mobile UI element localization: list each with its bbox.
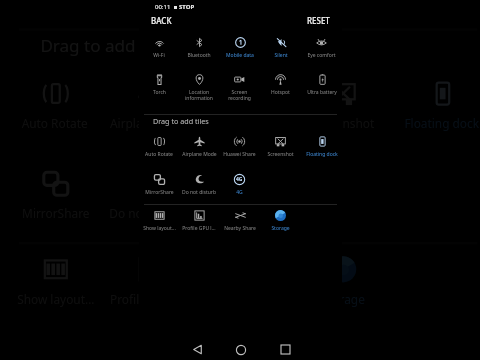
button[interactable]: Nearby Share	[219, 206, 260, 243]
button[interactable]: Airplane Mode	[102, 71, 197, 159]
button[interactable]: Wi-Fi	[139, 33, 179, 70]
button[interactable]: MirrorShare	[7, 161, 102, 249]
staticText: Location information	[185, 89, 213, 102]
button[interactable]: Mobile data	[219, 33, 260, 70]
staticText: Screenshot	[311, 116, 375, 133]
button[interactable]: MirrorShare	[139, 170, 179, 207]
staticText: Bluetooth	[187, 52, 211, 59]
button[interactable]	[301, 170, 342, 207]
button[interactable]: RESET	[307, 15, 330, 26]
staticText: Profile GPU l...	[182, 225, 216, 232]
button[interactable]	[260, 170, 301, 207]
button[interactable]: Floating dock	[392, 71, 480, 159]
button[interactable]: Huawei Share	[219, 132, 260, 169]
staticText: STOP	[179, 3, 195, 11]
staticText: Torch	[153, 89, 166, 96]
staticText: Floating dock	[404, 116, 480, 133]
staticText: MirrorShare	[145, 189, 174, 196]
staticText: Auto Rotate	[145, 151, 173, 158]
staticText: RESET	[307, 15, 330, 26]
button[interactable]: Screen recording	[219, 70, 260, 107]
button[interactable]: Storage	[294, 247, 392, 335]
button[interactable]: Profile GPU l...	[179, 206, 219, 243]
button[interactable]: 4G	[197, 161, 294, 249]
staticText: Ultra battery	[307, 89, 337, 96]
button[interactable]: Ultra battery	[301, 70, 342, 107]
staticText: Huawei Share	[207, 116, 285, 133]
staticText: Eye comfort	[307, 52, 336, 59]
staticText: Drag to add tiles	[40, 33, 173, 57]
staticText: Mobile data	[226, 52, 254, 59]
button[interactable]: Airplane Mode	[179, 132, 219, 169]
staticText: Floating dock	[306, 151, 338, 158]
staticText: Airplane Mode	[109, 116, 192, 133]
button[interactable]: Do not disturb	[102, 161, 197, 249]
button[interactable]: Eye comfort	[301, 33, 342, 70]
staticText: Screen recording	[228, 89, 251, 102]
staticText: Show layout...	[143, 225, 176, 232]
button[interactable]: Torch	[139, 70, 179, 107]
button[interactable]: Back	[186, 339, 208, 360]
staticText: Auto Rotate	[21, 116, 88, 133]
button[interactable]: Location information	[179, 70, 219, 107]
staticText: Storage	[321, 292, 366, 308]
staticText: BACK	[151, 15, 172, 26]
button[interactable]: Silent	[260, 33, 301, 70]
button[interactable]: Show layout...	[7, 247, 102, 335]
button[interactable]: Home	[230, 339, 252, 360]
staticText: Huawei Share	[223, 151, 256, 158]
staticText: Show layout...	[17, 292, 95, 308]
staticText: 4G	[237, 175, 254, 192]
button[interactable]: Hotspot	[260, 70, 301, 107]
button[interactable]: Screenshot	[294, 71, 392, 159]
staticText: Nearby Share	[224, 225, 256, 232]
button[interactable]: BACK	[151, 15, 172, 26]
staticText: 4G	[237, 206, 254, 223]
staticText: 4G	[236, 176, 243, 183]
button[interactable]: Bluetooth	[179, 33, 219, 70]
staticText: Hotspot	[271, 89, 290, 96]
staticText: Airplane Mode	[182, 151, 217, 158]
staticText: Storage	[271, 225, 290, 232]
staticText: 00:11	[155, 3, 171, 11]
button[interactable]: Recents	[274, 339, 296, 360]
button[interactable]: 4G	[219, 170, 260, 207]
staticText: Do not disturb	[109, 206, 190, 223]
button[interactable]: Show layout...	[139, 206, 179, 243]
button[interactable]: Auto Rotate	[139, 132, 179, 169]
staticText: 4G	[236, 189, 243, 196]
staticText: Screenshot	[267, 151, 294, 158]
button[interactable]: Do not disturb	[179, 170, 219, 207]
staticText: MirrorShare	[21, 206, 90, 223]
staticText: Silent	[274, 52, 288, 59]
staticText: Do not disturb	[182, 189, 216, 196]
button[interactable]: Storage	[260, 206, 301, 243]
button[interactable]: Location information	[102, 0, 197, 12]
button[interactable]: Screenshot	[260, 132, 301, 169]
button[interactable]: Auto Rotate	[7, 71, 102, 159]
button[interactable]: Huawei Share	[197, 71, 294, 159]
button[interactable]: Floating dock	[301, 132, 342, 169]
staticText: Wi-Fi	[153, 52, 165, 59]
staticText: Drag to add tiles	[153, 116, 209, 126]
